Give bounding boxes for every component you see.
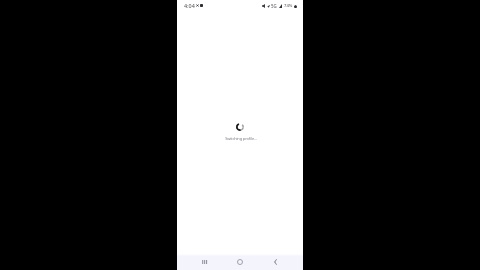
button[interactable]: Recent apps <box>198 254 212 270</box>
staticText: 74% <box>284 3 293 9</box>
staticText: Switching profile... <box>225 136 257 141</box>
staticText: 4:04 <box>184 2 195 9</box>
staticText: 5G <box>271 3 277 9</box>
button[interactable]: Home <box>233 254 247 270</box>
button[interactable]: Back <box>268 254 282 270</box>
